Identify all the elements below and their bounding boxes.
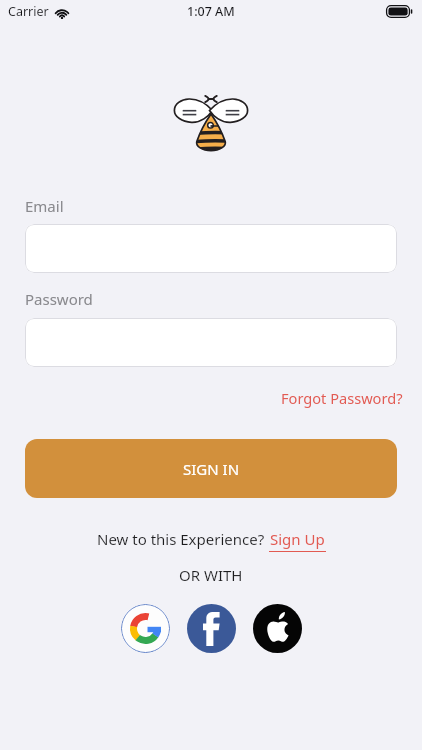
button[interactable]: Forgot Password? xyxy=(281,388,403,408)
staticText: Password xyxy=(25,289,93,309)
button[interactable] xyxy=(25,318,397,367)
button[interactable] xyxy=(25,224,397,273)
staticText: SIGN IN xyxy=(183,459,240,479)
button[interactable]: SIGN IN xyxy=(25,439,397,498)
staticText: Email xyxy=(25,196,64,216)
button[interactable]: Sign Up xyxy=(269,529,326,549)
button[interactable]: Sign in with Facebook xyxy=(187,604,236,653)
staticText: Forgot Password? xyxy=(281,388,403,408)
staticText: 1:07 AM xyxy=(187,3,235,20)
staticText: New to this Experience? xyxy=(97,529,269,549)
staticText: Carrier xyxy=(8,3,49,20)
staticText: Sign Up xyxy=(270,529,325,549)
button[interactable]: Sign in with Apple xyxy=(253,604,302,653)
staticText: OR WITH xyxy=(179,565,243,585)
button[interactable]: Sign in with Google xyxy=(121,604,170,653)
